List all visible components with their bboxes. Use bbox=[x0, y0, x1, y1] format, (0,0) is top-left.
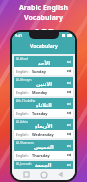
button[interactable]: Play pronunciation bbox=[67, 81, 71, 85]
button[interactable]: Play English bbox=[67, 153, 71, 157]
staticText: Monday bbox=[32, 90, 48, 95]
staticText: Wednesday bbox=[32, 132, 54, 137]
staticText: Tuesday bbox=[32, 111, 48, 116]
button[interactable]: Play pronunciation bbox=[67, 60, 71, 64]
staticText: الجمعة bbox=[35, 162, 52, 168]
button[interactable]: Play English bbox=[67, 132, 71, 136]
button[interactable]: Back bbox=[58, 172, 63, 177]
staticText: English : bbox=[16, 69, 30, 74]
staticText: Al-Jumuah bbox=[16, 162, 32, 166]
button[interactable]: Play pronunciation bbox=[67, 163, 71, 167]
button[interactable]: Al-Khamees bbox=[14, 140, 73, 159]
staticText: Vocabulary bbox=[30, 43, 58, 50]
staticText: Sunday bbox=[32, 69, 46, 74]
button[interactable]: Home bbox=[41, 172, 47, 178]
button[interactable]: Al-Ithnayn bbox=[14, 77, 73, 96]
button[interactable]: Play English bbox=[67, 69, 71, 73]
button[interactable]: Recents bbox=[24, 172, 29, 177]
button[interactable]: Ath-Thulatha bbox=[14, 98, 73, 117]
staticText: English : bbox=[16, 90, 30, 95]
staticText: الأحد bbox=[38, 60, 50, 66]
staticText: الاثنين bbox=[36, 81, 52, 87]
staticText: Al-Khamees bbox=[16, 141, 34, 145]
button[interactable]: Play English bbox=[67, 111, 71, 115]
staticText: Al-Arbia bbox=[16, 120, 28, 124]
staticText: Arabic English Vocabulary bbox=[0, 3, 87, 23]
staticText: Al-Ahad bbox=[16, 57, 28, 61]
button[interactable]: Play pronunciation bbox=[67, 144, 71, 148]
button[interactable]: Al-Arbia bbox=[14, 119, 73, 138]
button[interactable]: Al-Jumuah bbox=[14, 161, 73, 169]
staticText: English : bbox=[16, 111, 30, 116]
button[interactable]: Al-Ahad bbox=[14, 56, 73, 75]
staticText: Thursday bbox=[32, 153, 50, 158]
staticText: الثلاثاء bbox=[36, 102, 52, 108]
staticText: 9:41 bbox=[15, 33, 22, 38]
button[interactable]: Play English bbox=[67, 90, 71, 94]
staticText: الأربعاء bbox=[35, 123, 53, 129]
staticText: Al-Ithnayn bbox=[16, 78, 32, 82]
staticText: الخميس bbox=[34, 144, 54, 150]
staticText: English : bbox=[16, 132, 30, 137]
staticText: English : bbox=[16, 153, 30, 158]
button[interactable]: Play pronunciation bbox=[67, 123, 71, 127]
staticText: APP bbox=[33, 25, 55, 40]
button[interactable]: Play pronunciation bbox=[67, 102, 71, 106]
staticText: Ath-Thulatha bbox=[16, 99, 36, 103]
